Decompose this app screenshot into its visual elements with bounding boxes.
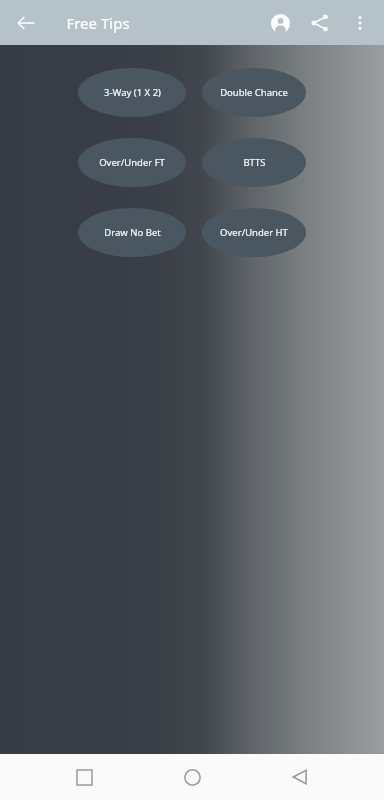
- button[interactable]: BTTS: [202, 138, 306, 187]
- button[interactable]: Double Chance: [202, 68, 306, 117]
- staticText: Over/Under FT: [99, 156, 165, 169]
- button[interactable]: Over/Under FT: [78, 138, 186, 187]
- button[interactable]: Back: [6, 3, 46, 43]
- button[interactable]: More options: [340, 3, 380, 43]
- button[interactable]: Recent apps: [60, 754, 108, 800]
- staticText: Draw No Bet: [104, 226, 161, 239]
- button[interactable]: Over/Under HT: [202, 208, 306, 257]
- button[interactable]: Share: [300, 3, 340, 43]
- button[interactable]: Account: [260, 3, 300, 43]
- button[interactable]: Draw No Bet: [78, 208, 186, 257]
- staticText: Free Tips: [66, 13, 130, 33]
- staticText: Over/Under HT: [220, 226, 288, 239]
- staticText: Double Chance: [220, 86, 288, 99]
- button[interactable]: Back: [276, 754, 324, 800]
- button[interactable]: Home: [168, 754, 216, 800]
- staticText: BTTS: [243, 156, 266, 169]
- button[interactable]: 3-Way (1 X 2): [78, 68, 186, 117]
- staticText: 3-Way (1 X 2): [104, 86, 161, 99]
